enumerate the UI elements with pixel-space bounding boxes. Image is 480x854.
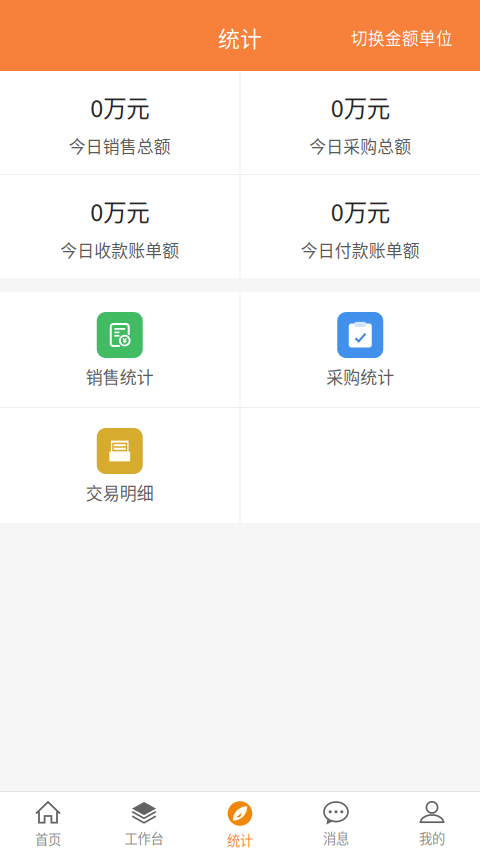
button[interactable]: 消息 — [288, 792, 384, 854]
staticText: 切换金额单位 — [351, 25, 453, 49]
staticText: 交易明细 — [86, 480, 154, 504]
staticText: 工作台 — [124, 828, 163, 847]
staticText: 今日采购总额 — [309, 133, 411, 158]
button[interactable]: 我的 — [384, 792, 480, 854]
button[interactable]: 销售统计 — [0, 292, 239, 407]
staticText: 统计 — [218, 22, 262, 53]
button[interactable]: 0万元 — [0, 71, 239, 174]
button[interactable]: 统计 — [192, 792, 288, 854]
button[interactable]: 0万元 — [0, 175, 239, 278]
staticText: 统计 — [227, 830, 253, 849]
button[interactable]: 0万元 — [240, 71, 480, 174]
staticText: 0万元 — [90, 194, 149, 228]
button[interactable]: 交易明细 — [0, 408, 239, 523]
staticText: 0万元 — [331, 90, 390, 124]
staticText: 消息 — [323, 828, 349, 847]
staticText: 今日销售总额 — [69, 133, 171, 158]
button[interactable]: 0万元 — [240, 175, 480, 278]
staticText: 0万元 — [90, 90, 149, 124]
staticText: 0万元 — [331, 194, 390, 228]
button[interactable]: 首页 — [0, 792, 96, 854]
button[interactable]: 工作台 — [96, 792, 192, 854]
staticText: 销售统计 — [86, 364, 154, 388]
staticText: 我的 — [419, 828, 445, 847]
button[interactable]: 切换金额单位 — [351, 23, 480, 47]
staticText: 今日付款账单额 — [301, 237, 420, 262]
button[interactable]: 采购统计 — [240, 292, 480, 407]
staticText: 首页 — [35, 829, 61, 848]
staticText: 今日收款账单额 — [60, 237, 179, 262]
staticText: 采购统计 — [326, 364, 394, 388]
